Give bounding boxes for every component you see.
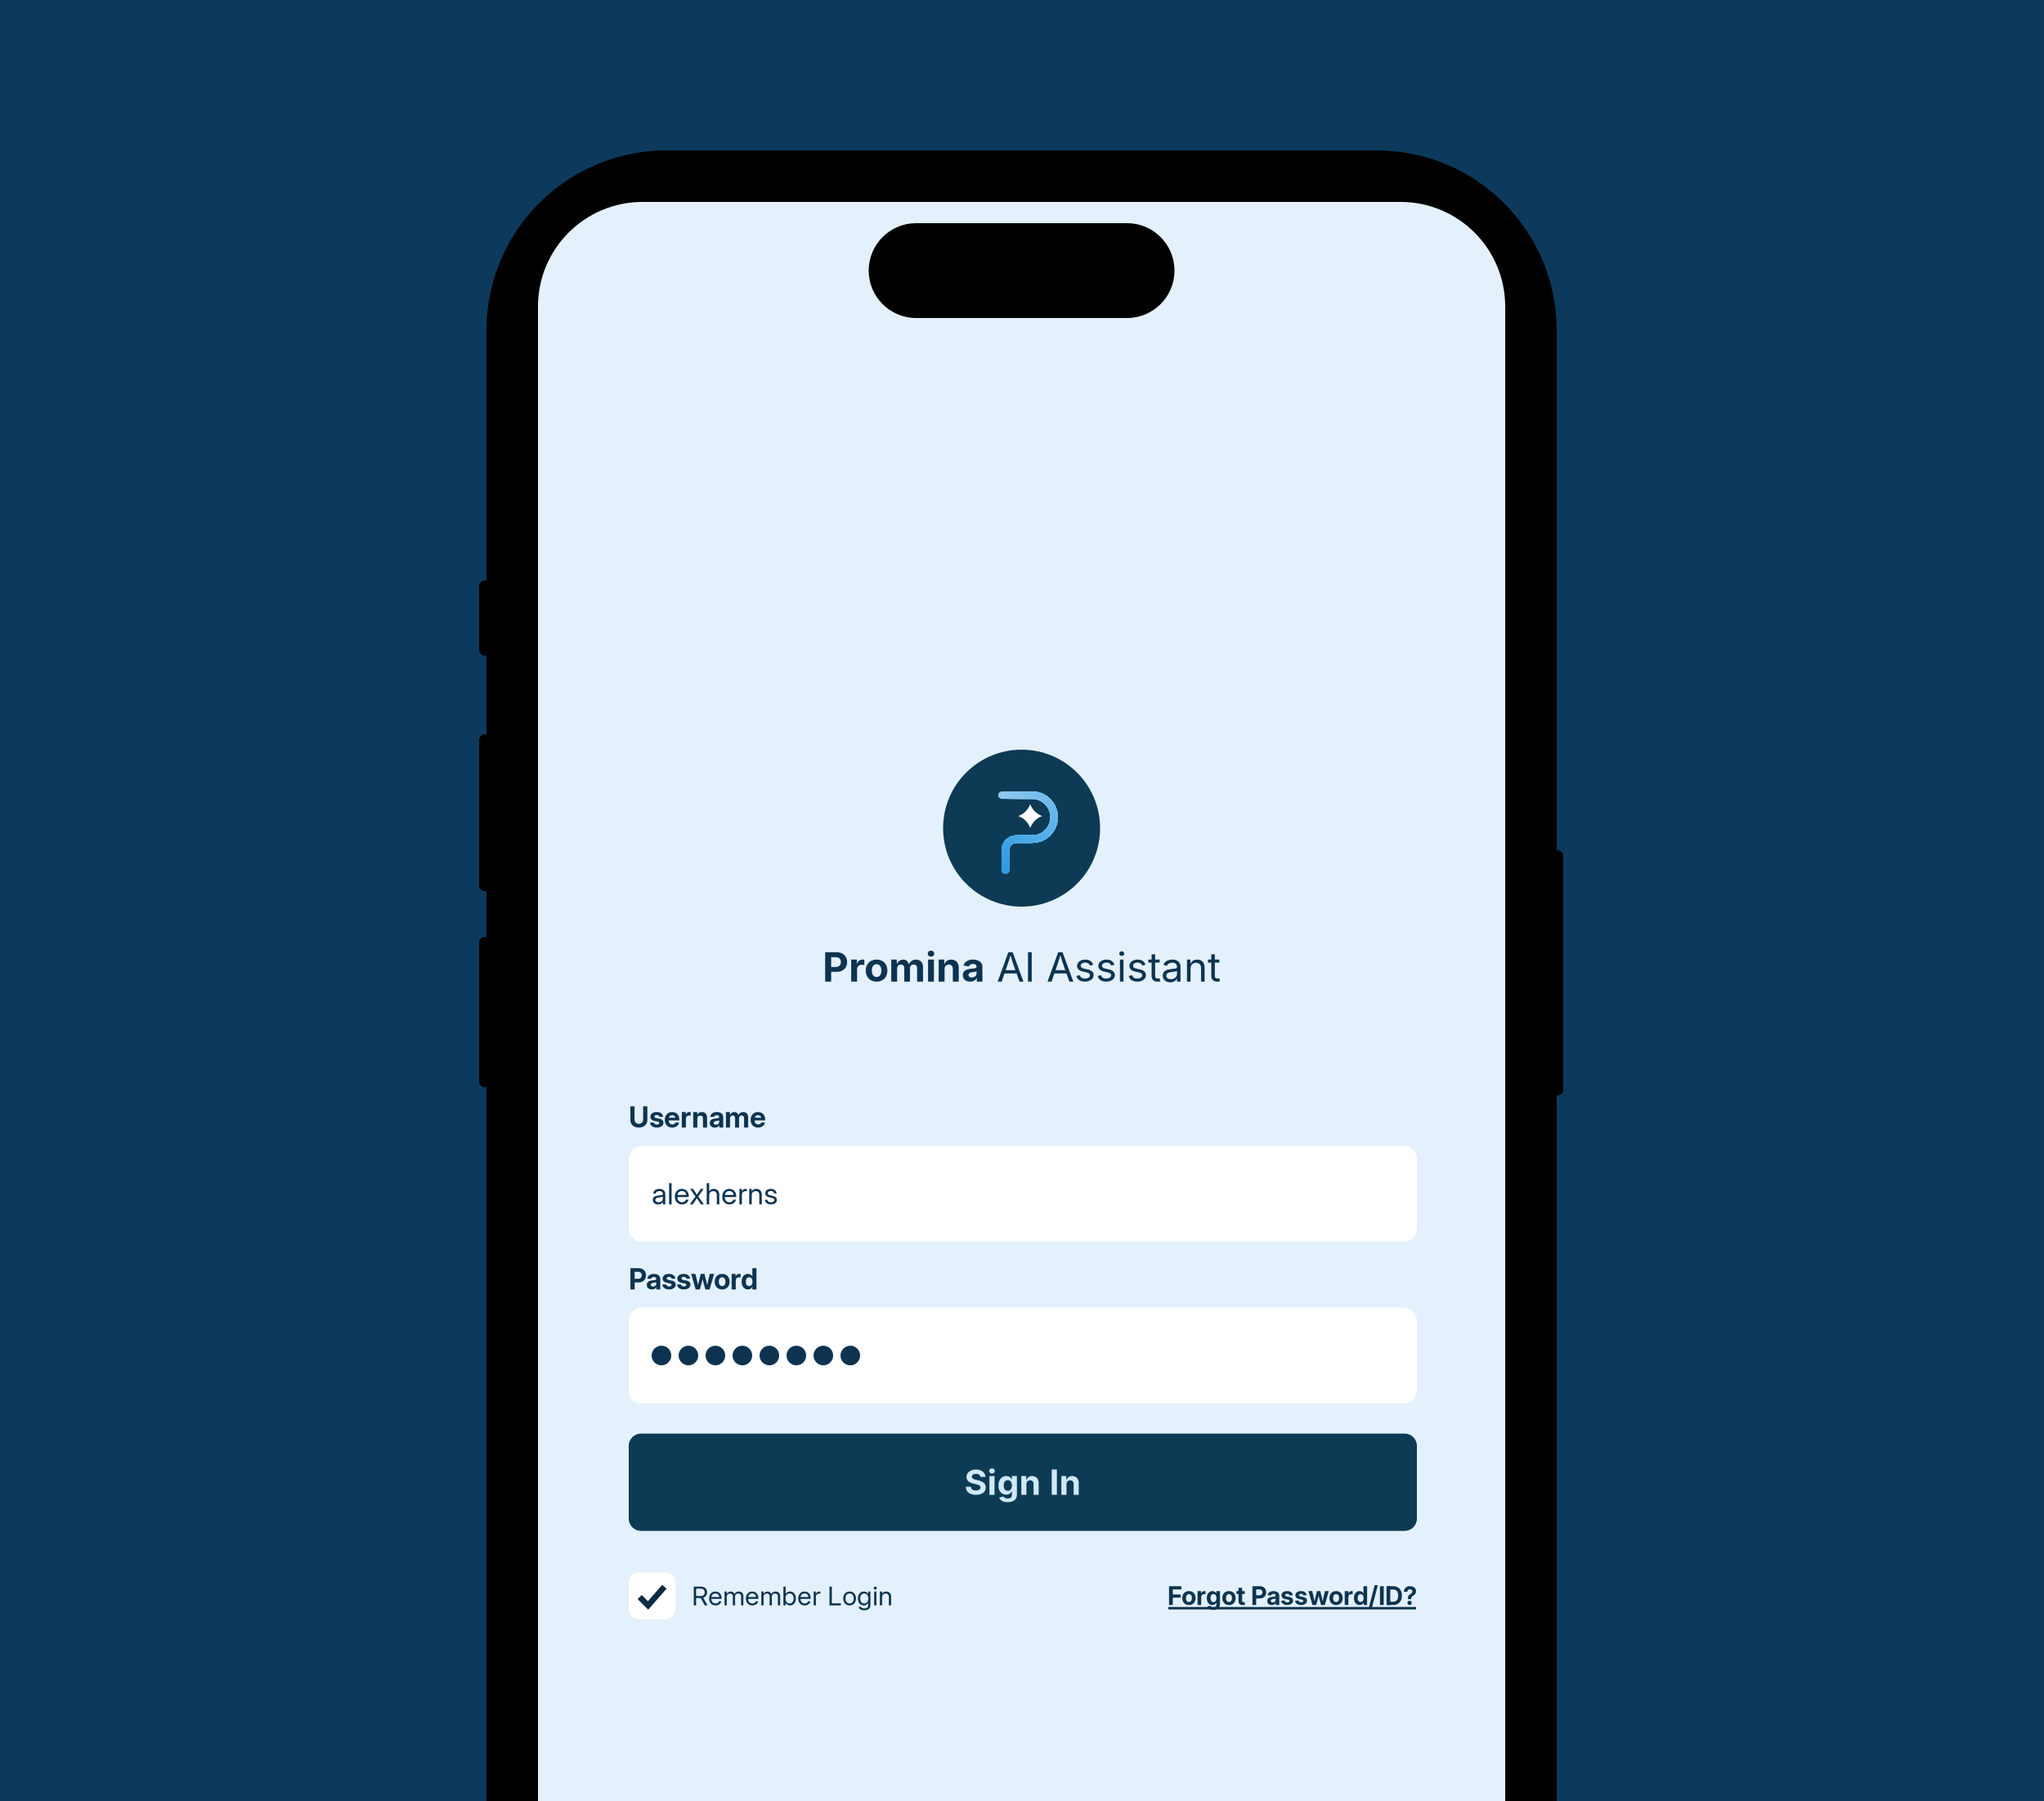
staticText: alexherns	[652, 1176, 778, 1212]
staticText: Remember Login	[692, 1580, 893, 1612]
button[interactable]: Password	[629, 1308, 1417, 1403]
button[interactable]: Remember Login	[629, 1573, 893, 1619]
staticText: Sign In	[964, 1461, 1081, 1503]
staticText: Password	[629, 1262, 758, 1296]
staticText: AI Assistant	[985, 943, 1221, 991]
staticText: Forgot Password/ID?	[1168, 1581, 1417, 1611]
staticText: Username	[629, 1100, 766, 1134]
button[interactable]: Forgot Password/ID?	[1168, 1581, 1417, 1611]
button[interactable]: Sign In	[629, 1434, 1417, 1531]
button[interactable]: Username	[629, 1146, 1417, 1241]
staticText: Promina	[823, 943, 985, 991]
